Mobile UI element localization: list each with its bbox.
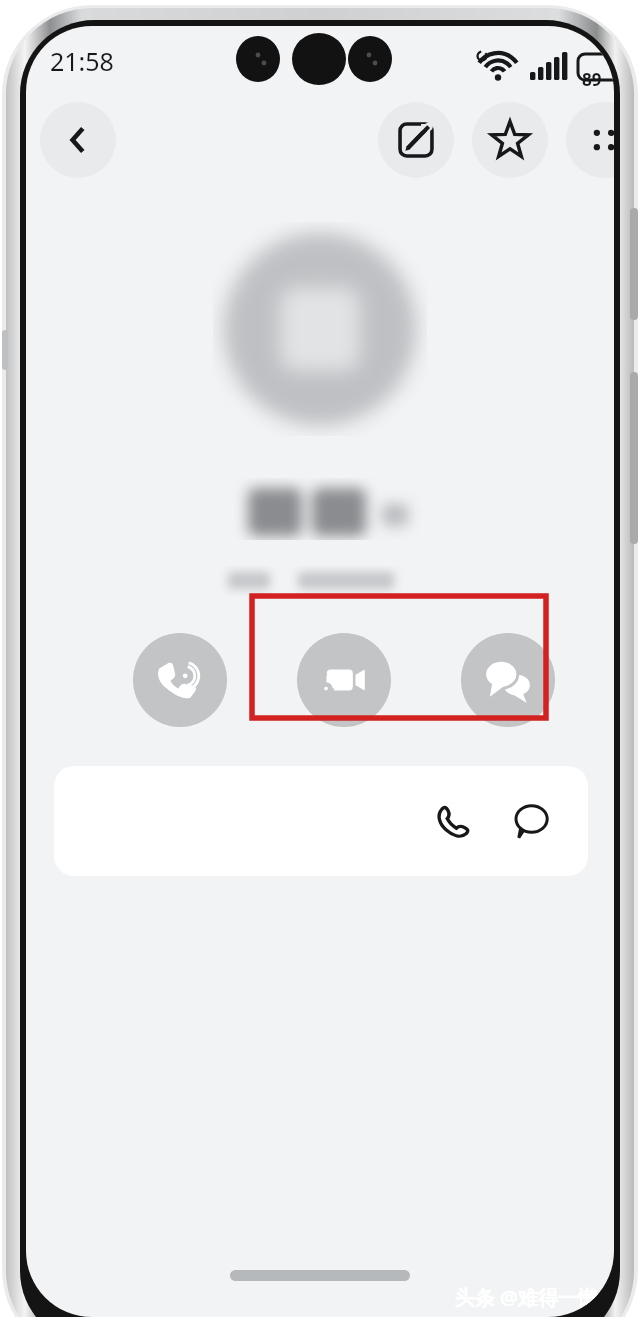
button[interactable]: Favorite <box>472 102 548 178</box>
button[interactable]: Call <box>422 789 486 853</box>
button[interactable]: Edit <box>378 102 454 178</box>
button[interactable]: Call <box>133 633 227 727</box>
button[interactable]: Video call <box>297 633 391 727</box>
button[interactable]: Message <box>461 633 555 727</box>
button[interactable]: More options <box>566 102 614 178</box>
button[interactable]: Back <box>40 102 116 178</box>
staticText: 21:58 <box>50 44 114 78</box>
button[interactable]: Call <box>54 766 588 876</box>
staticText: 头条 @难得一懒 <box>454 1284 598 1311</box>
staticText: 89 <box>582 68 602 91</box>
button[interactable]: Message <box>500 789 564 853</box>
